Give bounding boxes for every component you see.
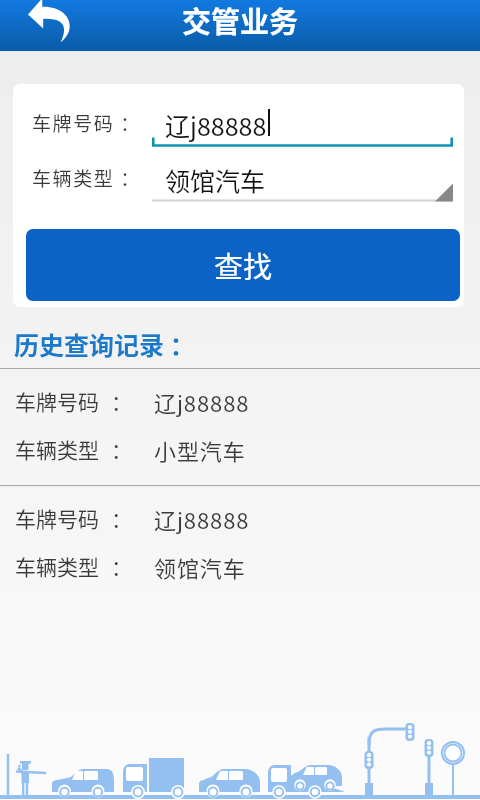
staticText: 车辆类型 ： (32, 164, 141, 192)
staticText: 辽j88888 (154, 503, 250, 535)
button[interactable]: 辽j88888 (152, 101, 453, 146)
staticText: 车辆类型 (15, 434, 99, 464)
staticText: 车牌号码 (15, 386, 99, 416)
staticText: ： (111, 551, 132, 581)
staticText: 交管业务 (182, 0, 299, 41)
staticText: 车牌号码 (15, 503, 99, 533)
button[interactable]: 领馆汽车 (152, 156, 453, 201)
staticText: 车牌号码 ： (32, 109, 141, 137)
staticText: 查找 (214, 244, 273, 286)
staticText: 领馆汽车 (154, 551, 246, 583)
staticText: 辽j88888 (154, 386, 250, 418)
button[interactable]: 查找 (26, 229, 460, 301)
staticText: 历史查询记录 ： (14, 326, 195, 362)
staticText: 车辆类型 (15, 551, 99, 581)
button[interactable]: 车牌号码 (0, 368, 480, 485)
button[interactable]: 车牌号码 (0, 485, 480, 602)
staticText: 辽j88888 (165, 107, 267, 143)
staticText: ： (111, 386, 132, 416)
button[interactable]: Back (28, 0, 74, 43)
staticText: ： (111, 503, 132, 533)
staticText: ： (111, 434, 132, 464)
staticText: 小型汽车 (154, 434, 246, 466)
staticText: 领馆汽车 (165, 162, 266, 198)
